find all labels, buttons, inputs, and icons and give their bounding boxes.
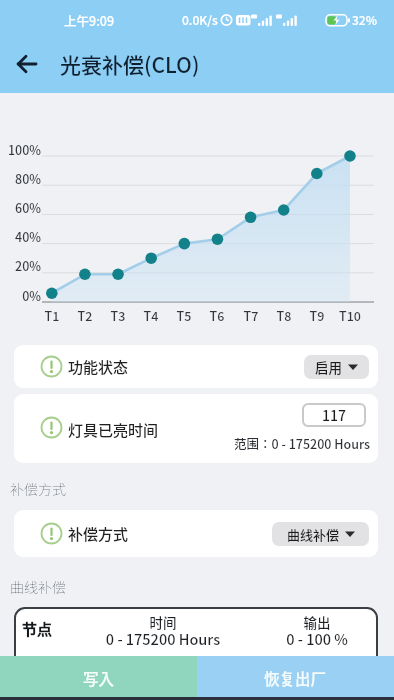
staticText: 时间 xyxy=(89,612,237,632)
staticText: T5 xyxy=(170,306,198,324)
button[interactable]: 写入 xyxy=(0,656,197,700)
button[interactable] xyxy=(15,52,39,76)
staticText: 32% xyxy=(352,11,377,28)
button[interactable]: 灯具已亮时间 xyxy=(14,394,378,463)
staticText: 上午9:09 xyxy=(64,11,115,29)
staticText: T8 xyxy=(270,306,298,324)
staticText: T1 xyxy=(38,306,66,324)
staticText: 启用 xyxy=(315,357,342,377)
button[interactable]: 启用 xyxy=(304,355,369,379)
button[interactable]: 恢复出厂 xyxy=(197,656,394,700)
staticText: 117 xyxy=(322,405,346,425)
button[interactable]: 117 xyxy=(302,403,366,427)
button[interactable]: 曲线补偿 xyxy=(272,522,369,546)
staticText: 0 - 100 % xyxy=(257,628,377,649)
staticText: 40% xyxy=(0,227,41,245)
staticText: 节点 xyxy=(22,618,53,640)
staticText: 灯具已亮时间 xyxy=(68,419,159,441)
staticText: 补偿方式 xyxy=(68,523,129,545)
staticText: 100% xyxy=(0,140,41,158)
staticText: 写入 xyxy=(83,667,115,689)
staticText: 0.0K/s xyxy=(182,11,218,28)
staticText: T4 xyxy=(137,306,165,324)
staticText: T7 xyxy=(237,306,265,324)
staticText: 80% xyxy=(0,169,41,187)
staticText: 范围：0 - 175200 Hours xyxy=(14,434,370,452)
staticText: T2 xyxy=(71,306,99,324)
staticText: 功能状态 xyxy=(68,356,129,378)
staticText: 恢复出厂 xyxy=(264,667,327,689)
staticText: T9 xyxy=(303,306,331,324)
staticText: 曲线补偿 xyxy=(10,577,66,597)
staticText: 补偿方式 xyxy=(10,479,66,499)
staticText: 曲线补偿 xyxy=(287,525,340,544)
staticText: 20% xyxy=(0,256,41,274)
staticText: 60% xyxy=(0,198,41,216)
staticText: 输出 xyxy=(257,612,377,632)
staticText: T6 xyxy=(203,306,231,324)
staticText: 0 - 175200 Hours xyxy=(89,628,237,649)
staticText: T3 xyxy=(104,306,132,324)
button[interactable]: 功能状态 xyxy=(14,345,378,388)
button[interactable]: 补偿方式 xyxy=(14,510,378,557)
staticText: T10 xyxy=(336,306,364,324)
staticText: 0% xyxy=(0,286,41,304)
staticText: 光衰补偿(CLO) xyxy=(60,49,200,79)
